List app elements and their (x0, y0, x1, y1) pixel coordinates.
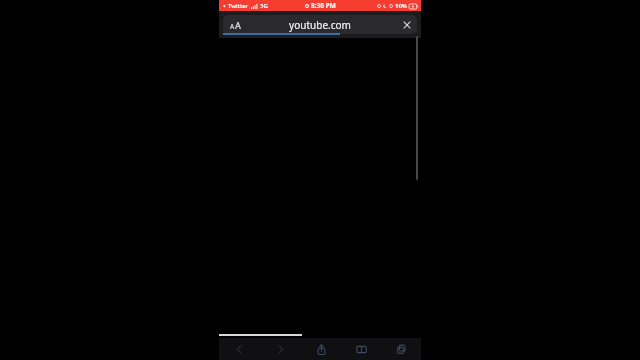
button[interactable]: Bookmarks (341, 338, 381, 360)
button[interactable]: Stop loading (400, 18, 414, 32)
staticText: 8:30 PM (311, 1, 336, 10)
button[interactable]: Back (219, 338, 260, 360)
button[interactable]: Forward (260, 338, 301, 360)
staticText: 10% (395, 2, 407, 10)
staticText: Twitter (228, 2, 249, 10)
staticText: youtube.com (289, 18, 351, 32)
staticText: A (235, 19, 241, 31)
button[interactable]: Page settings (226, 16, 244, 33)
staticText: A (230, 22, 235, 31)
button[interactable]: Tabs (381, 338, 421, 360)
staticText: 3G (260, 2, 268, 10)
button[interactable]: Share (301, 338, 341, 360)
